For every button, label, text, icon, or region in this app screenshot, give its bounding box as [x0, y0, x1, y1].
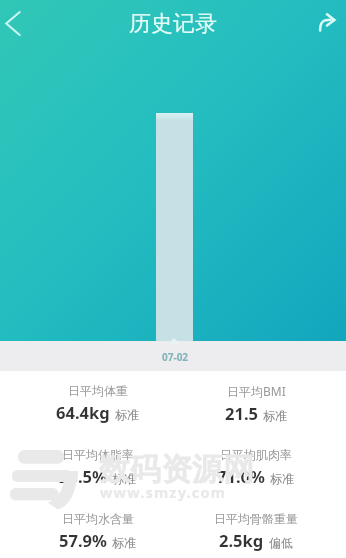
staticText: www.smzy.com [100, 482, 227, 502]
staticText: 历史记录 [129, 10, 217, 38]
button[interactable]: 日平均BMI [225, 383, 287, 424]
button[interactable]: 日平均体重 [56, 383, 139, 423]
staticText: 标准 [115, 407, 139, 422]
staticText: 日平均体脂率 [62, 447, 134, 462]
button[interactable]: 日平均肌肉率 [217, 447, 294, 487]
staticText: 2.5kg [219, 529, 264, 551]
staticText: 71.0% [217, 465, 265, 487]
staticText: 日平均骨骼重量 [214, 511, 298, 526]
button[interactable]: Share [302, 0, 346, 46]
staticText: 数码资源网 [99, 450, 254, 489]
staticText: 日平均BMI [227, 383, 286, 399]
button[interactable]: 日平均水含量 [59, 511, 136, 551]
staticText: 07-02 [162, 350, 189, 364]
staticText: 21.5 [225, 402, 258, 424]
staticText: 标准 [112, 471, 136, 486]
staticText: 日平均水含量 [62, 511, 134, 526]
staticText: 标准 [270, 471, 294, 486]
button[interactable]: Back [0, 0, 44, 46]
staticText: 标准 [263, 408, 287, 423]
staticText: 偏低 [269, 535, 293, 550]
button[interactable]: 日平均骨骼重量 [214, 511, 298, 551]
staticText: 64.4kg [56, 401, 110, 423]
staticText: 57.9% [59, 529, 107, 551]
staticText: 日平均体重 [68, 383, 128, 398]
staticText: 25.5% [59, 465, 107, 487]
staticText: 标准 [112, 535, 136, 550]
button[interactable]: 日平均体脂率 [59, 447, 136, 487]
staticText: 日平均肌肉率 [220, 447, 292, 462]
